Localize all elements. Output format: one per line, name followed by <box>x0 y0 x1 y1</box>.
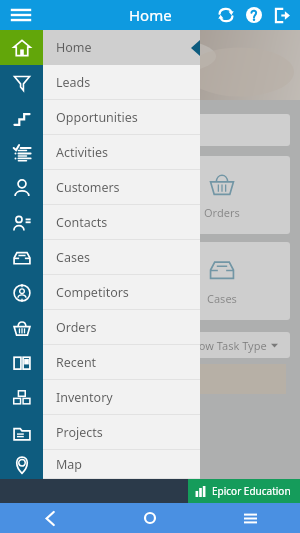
button[interactable]: Projects <box>0 415 200 450</box>
button[interactable]: Orders <box>154 156 290 234</box>
staticText: Competitors <box>56 284 129 301</box>
button[interactable]: Competitors <box>0 275 200 310</box>
staticText: ....epicor.net <box>34 58 97 73</box>
button[interactable]: Orders <box>0 310 200 345</box>
staticText: Map <box>56 456 83 473</box>
button[interactable]: Customers <box>0 170 200 205</box>
button[interactable]: Help <box>240 1 268 29</box>
button[interactable]: Home <box>0 30 200 65</box>
staticText: Home <box>129 5 172 25</box>
button[interactable]: Epicor Education <box>188 479 300 503</box>
button[interactable]: Log out <box>268 1 296 29</box>
button[interactable]: Recent <box>0 345 200 380</box>
button[interactable]: Leads <box>10 242 146 320</box>
staticText: Activities <box>55 205 101 220</box>
button[interactable]: Inventory <box>0 380 200 415</box>
staticText: Customers <box>56 179 120 196</box>
staticText: Projects <box>56 424 103 441</box>
staticText: Leads <box>56 74 91 91</box>
staticText: Orders <box>56 319 97 336</box>
button[interactable]: Contacts <box>0 205 200 240</box>
button[interactable]: Opportunities <box>0 100 200 135</box>
button[interactable]: Show Task Type <box>10 332 290 358</box>
button[interactable]: Recent apps <box>233 503 267 533</box>
button[interactable]: Cases <box>0 240 200 275</box>
staticText: Recent <box>56 354 97 371</box>
staticText: Leads <box>63 291 94 306</box>
staticText: Activities 18 <box>20 121 98 140</box>
staticText: Activities <box>56 144 109 161</box>
button[interactable]: Activities <box>10 156 146 234</box>
staticText: Inventory <box>56 389 113 406</box>
staticText: Cases <box>56 249 90 266</box>
button[interactable]: Open navigation menu <box>6 0 36 30</box>
staticText: Contacts <box>56 214 108 231</box>
staticText: Orders <box>204 205 240 220</box>
staticText: Cases <box>207 291 237 306</box>
button[interactable]: Cases <box>154 242 290 320</box>
staticText: Show Task Type <box>186 338 267 353</box>
button[interactable]: Activities 18 <box>10 114 290 146</box>
button[interactable]: Home <box>133 503 167 533</box>
button[interactable]: Map <box>0 450 200 479</box>
staticText: Home <box>56 39 92 56</box>
button[interactable]: Activities <box>0 135 200 170</box>
button[interactable]: Leads <box>0 65 200 100</box>
staticText: Opportunities <box>56 109 138 126</box>
staticText: Epicor Education <box>212 484 291 498</box>
button[interactable]: Back <box>33 503 67 533</box>
button[interactable]: Refresh <box>212 1 240 29</box>
